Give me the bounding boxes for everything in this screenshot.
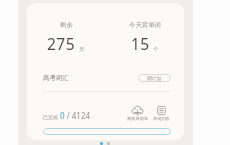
staticText: 天 [79,46,85,53]
button[interactable]: 离线单词包 [126,106,149,121]
button[interactable]: 剩余 [27,3,184,140]
button[interactable]: 调计划 [138,74,171,82]
staticText: 调计划 [147,75,162,81]
staticText: 个 [153,46,159,53]
staticText: 15 [131,33,150,54]
staticText: 275 [47,33,76,54]
staticText: 剩余 [60,21,73,29]
staticText: 已完成 0 / 4124 [43,110,91,121]
button[interactable]: 单词列表 [152,106,171,121]
staticText: 单词列表 [153,116,170,121]
staticText: 今天背单词 [129,21,161,29]
other: 单词列表 [156,106,167,115]
staticText: 高考词汇 [43,74,69,82]
other: 离线单词包 [132,106,143,115]
staticText: 离线单词包 [127,116,148,121]
